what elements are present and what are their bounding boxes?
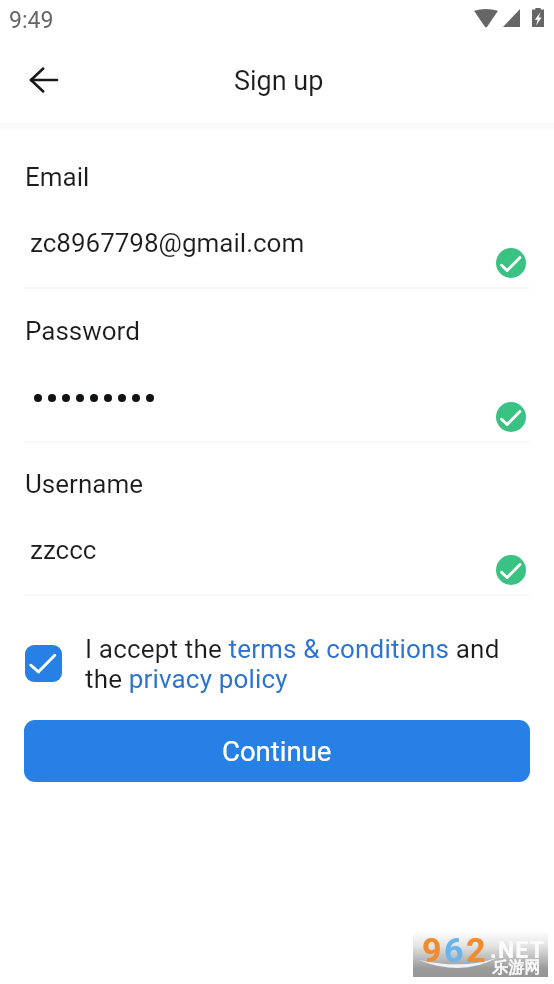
staticText: 6 xyxy=(444,930,466,970)
staticText: Continue xyxy=(222,735,332,767)
staticText: 乐游网 xyxy=(492,958,540,978)
staticText: I accept the terms & conditions and the … xyxy=(85,634,515,694)
staticText: zzccc xyxy=(30,535,97,565)
button[interactable]: Back xyxy=(18,55,68,105)
staticText: Username xyxy=(25,469,143,499)
staticText: .NET xyxy=(490,937,546,964)
button[interactable]: Accept terms and conditions xyxy=(25,645,62,682)
staticText: Sign up xyxy=(234,65,324,97)
staticText: 9:49 xyxy=(9,7,54,34)
staticText: zc8967798@gmail.com xyxy=(30,228,305,258)
staticText: Email xyxy=(25,162,90,192)
button[interactable]: Continue xyxy=(24,720,530,782)
staticText: Password xyxy=(25,316,140,346)
staticText: 9 xyxy=(422,930,444,970)
staticText: 2 xyxy=(466,930,488,970)
